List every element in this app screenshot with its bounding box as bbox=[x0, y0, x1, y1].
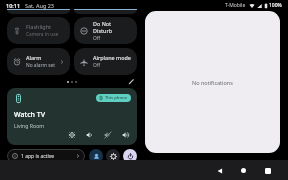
button[interactable]: Back bbox=[213, 164, 226, 177]
staticText: Off bbox=[93, 62, 101, 69]
button[interactable] bbox=[74, 9, 137, 14]
button[interactable]: Power bbox=[123, 149, 137, 163]
button[interactable]: This phone bbox=[96, 94, 131, 102]
button[interactable] bbox=[7, 9, 70, 14]
button[interactable]: Mute bbox=[102, 129, 113, 140]
button[interactable]: Recents bbox=[261, 164, 274, 177]
button[interactable]: Airplane mode bbox=[74, 48, 137, 75]
staticText: Do Not Disturb bbox=[93, 20, 131, 34]
button[interactable]: Alarm bbox=[7, 48, 70, 75]
staticText: This phone bbox=[105, 95, 128, 101]
staticText: Sat, Aug 23 bbox=[25, 2, 55, 9]
staticText: Off bbox=[93, 35, 101, 42]
staticText: 10:11 bbox=[6, 2, 21, 9]
staticText: T-Mobile bbox=[225, 2, 246, 9]
staticText: 100% bbox=[269, 2, 282, 9]
button[interactable]: Edit tiles bbox=[126, 76, 137, 87]
staticText: Airplane mode bbox=[93, 54, 131, 61]
staticText: Watch TV bbox=[14, 110, 46, 120]
button[interactable]: This phone bbox=[7, 88, 137, 145]
button[interactable]: Flashlight bbox=[7, 17, 70, 44]
staticText: 1 app is active bbox=[21, 153, 55, 160]
button[interactable]: No notifications bbox=[145, 11, 280, 153]
staticText: No alarm set bbox=[26, 62, 55, 69]
button[interactable]: Volume up bbox=[120, 129, 131, 140]
button[interactable]: Volume down bbox=[84, 129, 95, 140]
button[interactable]: D-pad bbox=[66, 129, 77, 140]
button[interactable]: Settings bbox=[106, 149, 120, 163]
staticText: Flashlight bbox=[26, 23, 52, 30]
button[interactable]: 1 app is active bbox=[7, 149, 85, 163]
staticText: Camera in use bbox=[26, 31, 59, 38]
button[interactable]: Do Not Disturb bbox=[74, 17, 137, 44]
button[interactable]: Home bbox=[237, 164, 250, 177]
staticText: Alarm bbox=[26, 54, 42, 61]
staticText: No notifications bbox=[192, 79, 233, 86]
staticText: Living Room bbox=[14, 122, 45, 129]
button[interactable]: Account bbox=[89, 149, 103, 163]
